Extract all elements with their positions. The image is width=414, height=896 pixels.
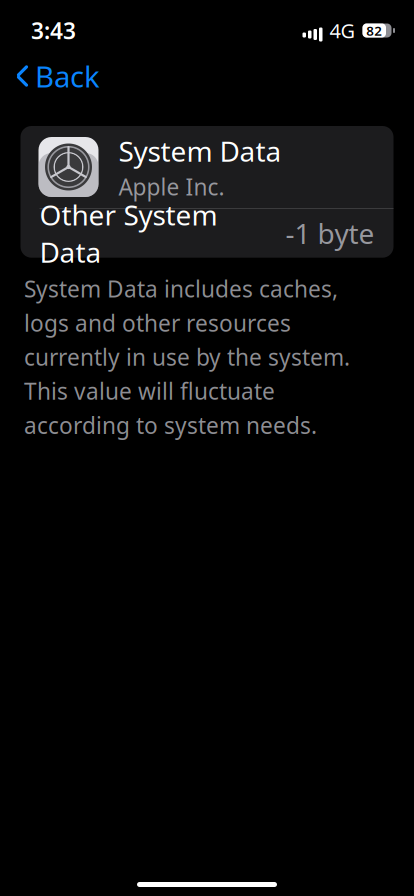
staticText: 4G: [329, 17, 355, 44]
staticText: Other System Data: [39, 196, 217, 270]
staticText: -1 byte: [285, 215, 374, 252]
staticText: 82: [366, 22, 382, 39]
button[interactable]: Other System Data: [20, 209, 393, 258]
staticText: Apple Inc.: [118, 171, 224, 202]
staticText: System Data includes caches, logs and ot…: [24, 274, 350, 440]
staticText: 3:43: [31, 15, 76, 45]
staticText: System Data: [118, 132, 281, 170]
button[interactable]: Back: [8, 50, 112, 101]
staticText: Back: [35, 56, 100, 95]
